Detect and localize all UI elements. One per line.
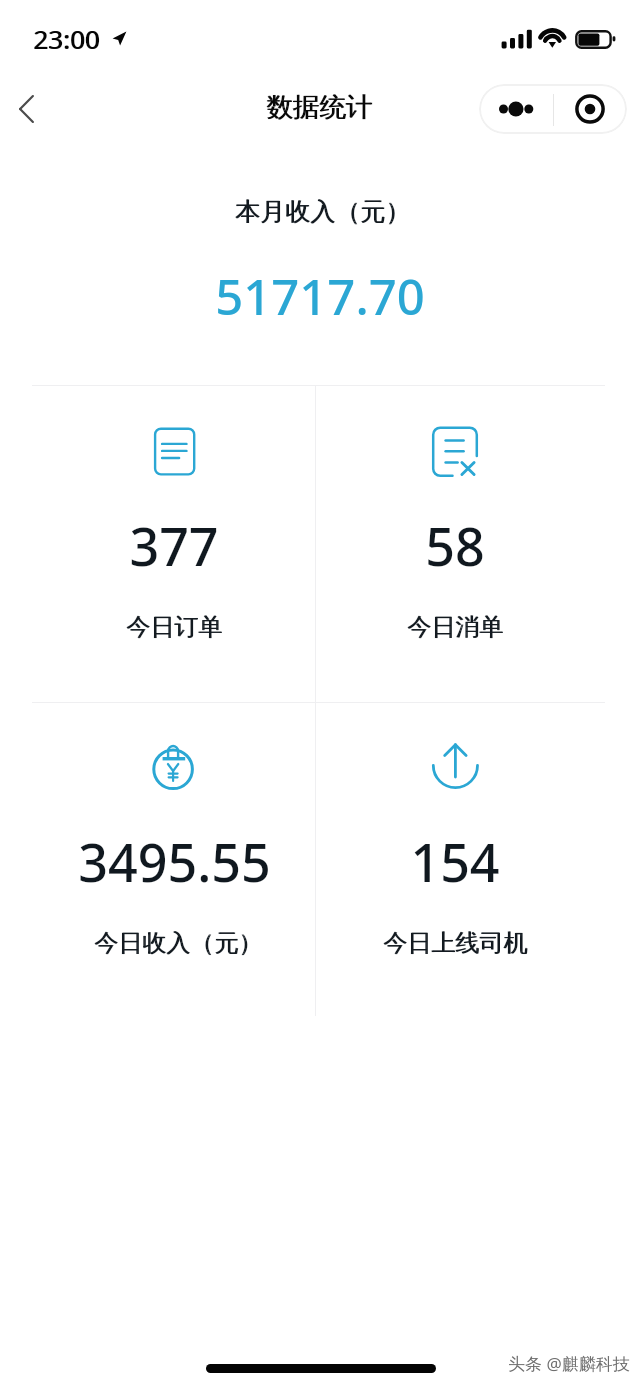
staticText: 今日订单 [127, 612, 223, 642]
staticText: 今日消单 [408, 612, 504, 642]
button[interactable] [32, 385, 315, 702]
staticText: 本月收入（元） [235, 196, 410, 227]
button[interactable]: Back [0, 74, 70, 144]
staticText: 58 [425, 510, 485, 581]
staticText: 377 [129, 510, 219, 581]
staticText: 今日消单 [407, 612, 503, 642]
button[interactable]: Close mini program [554, 84, 626, 134]
button[interactable] [315, 385, 605, 702]
staticText: 23:00 [33, 21, 100, 56]
staticText: 数据统计 [267, 90, 373, 123]
staticText: 23:00 [34, 21, 101, 56]
staticText: 3495.55 [78, 826, 271, 897]
staticText: 今日收入（元） [95, 928, 263, 958]
staticText: 今日订单 [126, 612, 222, 642]
staticText: 51717.70 [215, 263, 425, 330]
button[interactable]: More options [479, 84, 553, 134]
button[interactable] [315, 702, 605, 1017]
staticText: 154 [410, 826, 500, 897]
staticText: 今日上线司机 [384, 928, 528, 958]
staticText: 今日上线司机 [383, 928, 527, 958]
staticText: 今日收入（元） [94, 928, 262, 958]
staticText: 头条 @麒麟科技 [508, 1352, 630, 1375]
staticText: 本月收入（元） [236, 196, 411, 227]
staticText: 数据统计 [266, 90, 372, 123]
button[interactable] [32, 702, 315, 1017]
